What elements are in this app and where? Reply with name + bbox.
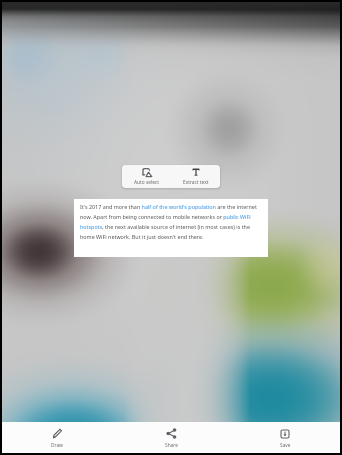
staticText: Save bbox=[280, 442, 291, 449]
button[interactable]: Save bbox=[228, 422, 342, 455]
button[interactable]: Share bbox=[114, 422, 228, 455]
button[interactable]: Auto select bbox=[122, 165, 171, 188]
staticText: Share bbox=[165, 442, 178, 449]
staticText: Auto select bbox=[134, 179, 159, 186]
button[interactable]: Extract text bbox=[171, 165, 220, 188]
button[interactable]: Draw bbox=[0, 422, 114, 455]
staticText: Extract text bbox=[183, 179, 209, 186]
staticText: It's 2017 and more than half of the worl… bbox=[80, 203, 262, 241]
staticText: Draw bbox=[51, 442, 63, 449]
